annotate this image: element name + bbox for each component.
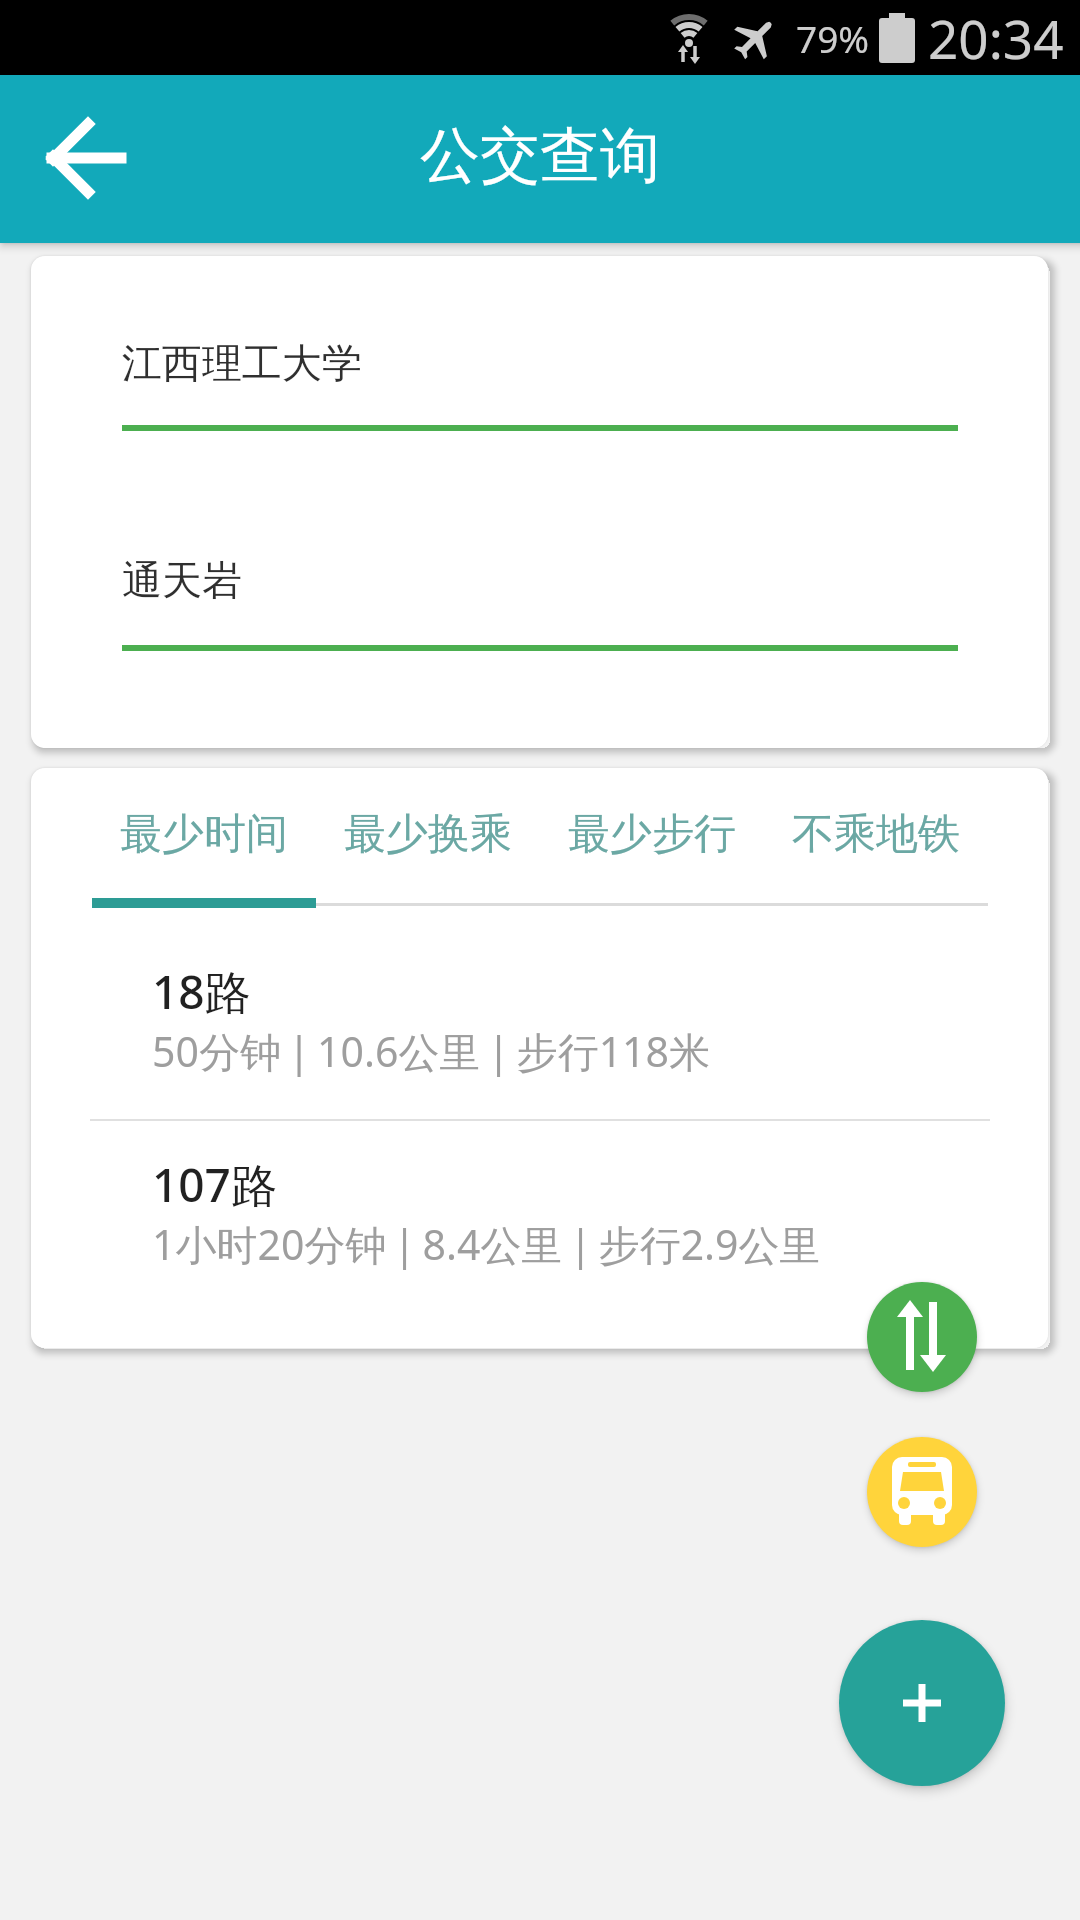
staticText: 不乘地铁 [792, 808, 960, 861]
button[interactable] [867, 1282, 977, 1392]
staticText: 18路 [152, 960, 251, 1023]
button[interactable]: 不乘地铁 [764, 768, 988, 900]
button[interactable] [867, 1437, 977, 1547]
button[interactable]: 江西理工大学 [122, 313, 958, 431]
button[interactable]: 107路 [90, 1121, 990, 1311]
button[interactable]: 18路 [90, 928, 990, 1118]
staticText: 通天岩 [122, 555, 242, 605]
staticText: 50分钟 | 10.6公里 | 步行118米 [152, 1023, 711, 1079]
button[interactable]: 最少时间 [92, 768, 316, 900]
button[interactable]: 最少换乘 [316, 768, 540, 900]
staticText: 最少时间 [120, 808, 288, 861]
staticText: 79% [796, 13, 870, 63]
button[interactable] [32, 104, 140, 212]
staticText: 1小时20分钟 | 8.4公里 | 步行2.9公里 [152, 1216, 821, 1272]
staticText: 最少步行 [568, 808, 736, 861]
button[interactable]: 最少步行 [540, 768, 764, 900]
button[interactable]: 通天岩 [122, 533, 958, 651]
staticText: 江西理工大学 [122, 338, 362, 388]
staticText: 107路 [152, 1153, 277, 1216]
staticText: 最少换乘 [344, 808, 512, 861]
staticText: 公交查询 [420, 118, 660, 194]
staticText: 20:34 [928, 2, 1064, 74]
button[interactable] [839, 1620, 1005, 1786]
